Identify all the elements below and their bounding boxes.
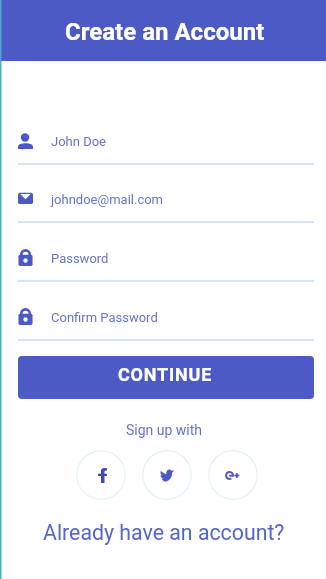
button[interactable]: Confirm Password bbox=[18, 309, 314, 341]
staticText: Already have an account? bbox=[43, 520, 285, 545]
staticText: CONTINUE bbox=[118, 364, 213, 385]
staticText: Confirm Password bbox=[51, 310, 158, 325]
button[interactable]: Sign up with Facebook bbox=[76, 450, 126, 500]
button[interactable]: Already have an account? bbox=[0, 520, 326, 545]
staticText: John Doe bbox=[51, 134, 106, 149]
staticText: Create an Account bbox=[65, 18, 265, 46]
staticText: Password bbox=[51, 251, 109, 266]
button[interactable]: John Doe bbox=[18, 133, 314, 165]
staticText: johndoe@mail.com bbox=[51, 192, 164, 207]
staticText: Sign up with bbox=[126, 422, 203, 438]
button[interactable]: Sign up with Twitter bbox=[142, 450, 192, 500]
button[interactable]: Password bbox=[18, 250, 314, 282]
button[interactable]: CONTINUE bbox=[18, 356, 314, 399]
button[interactable]: Sign up with Google Plus bbox=[208, 450, 258, 500]
button[interactable]: johndoe@mail.com bbox=[18, 191, 314, 223]
